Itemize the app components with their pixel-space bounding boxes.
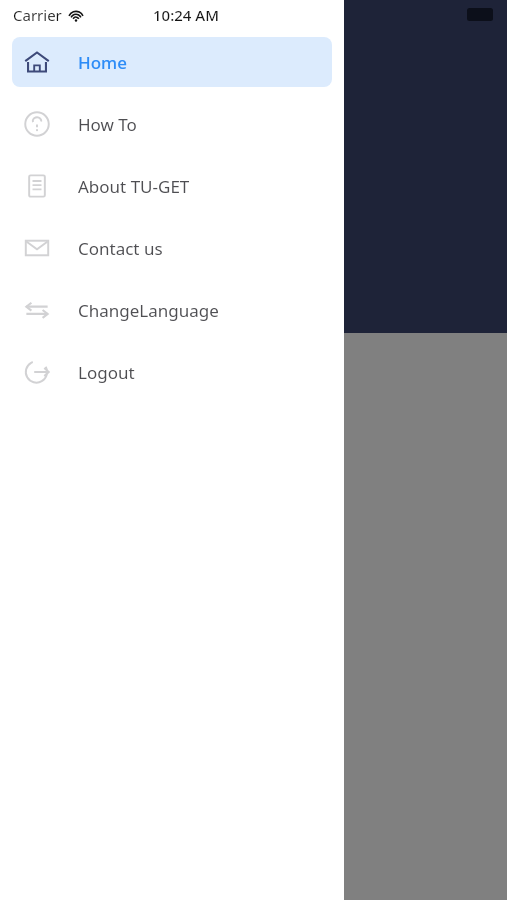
staticText: ChangeLanguage bbox=[78, 299, 219, 322]
staticText: 10:24 AM bbox=[153, 5, 219, 25]
button[interactable]: Contact us bbox=[12, 223, 332, 273]
staticText: Carrier bbox=[13, 5, 62, 25]
button[interactable]: About TU-GET bbox=[12, 161, 332, 211]
staticText: Logout bbox=[78, 361, 135, 384]
staticText: About TU-GET bbox=[78, 175, 190, 198]
staticText: Home bbox=[78, 51, 127, 74]
button[interactable]: ChangeLanguage bbox=[12, 285, 332, 335]
staticText: Contact us bbox=[78, 237, 163, 260]
button[interactable]: Logout bbox=[12, 347, 332, 397]
button[interactable]: How To bbox=[12, 99, 332, 149]
staticText: How To bbox=[78, 113, 137, 136]
button[interactable]: Home bbox=[12, 37, 332, 87]
